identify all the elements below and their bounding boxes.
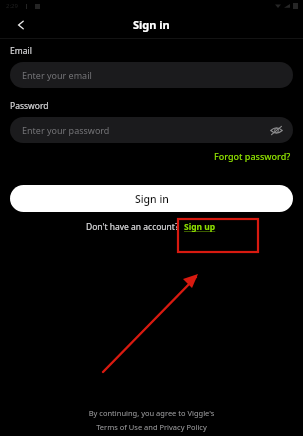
staticText: Enter your password xyxy=(22,124,110,136)
staticText: Email xyxy=(10,45,32,57)
staticText: Password xyxy=(10,100,49,112)
button[interactable]: Enter your password xyxy=(10,117,293,143)
staticText: Enter your email xyxy=(22,69,92,81)
staticText: Sign in xyxy=(135,192,169,206)
staticText: Sign up xyxy=(184,221,216,233)
staticText: Don't have an account? xyxy=(86,221,179,233)
staticText: Sign in xyxy=(133,17,170,32)
button[interactable]: Back xyxy=(9,13,33,37)
button[interactable]: Enter your email xyxy=(10,62,293,88)
staticText: Forgot password? xyxy=(214,150,291,162)
button[interactable]: Forgot password? xyxy=(212,149,293,163)
staticText: 2:29 xyxy=(6,2,18,10)
button[interactable]: Sign up xyxy=(183,221,217,233)
button[interactable]: Sign in xyxy=(10,185,293,212)
staticText: Terms of Use and Privacy Policy xyxy=(0,422,303,432)
button[interactable]: Show password xyxy=(267,121,285,139)
staticText: By continuing, you agree to Viggle's xyxy=(0,408,303,418)
